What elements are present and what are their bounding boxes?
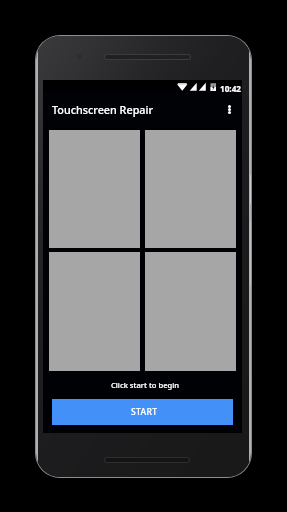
button[interactable]: More options	[216, 96, 242, 122]
staticText: 10:42	[220, 83, 242, 94]
staticText: Touchscreen Repair	[52, 102, 153, 117]
staticText: START	[131, 406, 158, 418]
staticText: Click start to begin	[111, 380, 180, 390]
button[interactable]: START	[52, 399, 233, 425]
